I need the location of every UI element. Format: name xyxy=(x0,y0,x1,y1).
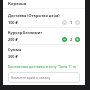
button[interactable]: Бесплатная доставка в зону "Зона 1" от 1… xyxy=(8,63,80,70)
button[interactable]: Доставка (Открытая цена) xyxy=(8,11,80,27)
button[interactable]: Сумма xyxy=(8,45,80,61)
staticText: 1 xyxy=(70,20,73,25)
staticText: Комментарий к заказу xyxy=(11,75,51,80)
button[interactable]: Уменьшить xyxy=(62,37,67,42)
staticText: 100 ₽ xyxy=(8,20,18,25)
staticText: 300 ₽ xyxy=(8,54,18,59)
button[interactable]: Уменьшить xyxy=(62,20,67,25)
staticText: Доставка (Открытая цена) xyxy=(8,13,60,18)
staticText: Бесплатная доставка в зону "Зона 1" от 1… xyxy=(8,64,80,69)
button[interactable]: Комментарий к заказу xyxy=(8,72,80,83)
staticText: Корзина xyxy=(8,1,27,7)
button[interactable]: Курьер Безлимит xyxy=(8,28,80,44)
staticText: Сумма xyxy=(8,47,22,52)
button[interactable]: Увеличить xyxy=(75,20,80,25)
staticText: 2 xyxy=(70,37,73,42)
button[interactable]: Увеличить xyxy=(75,37,80,42)
button[interactable]: Корзина xyxy=(3,0,85,8)
staticText: 200 ₽ xyxy=(8,37,18,42)
staticText: Курьер Безлимит xyxy=(8,30,43,35)
